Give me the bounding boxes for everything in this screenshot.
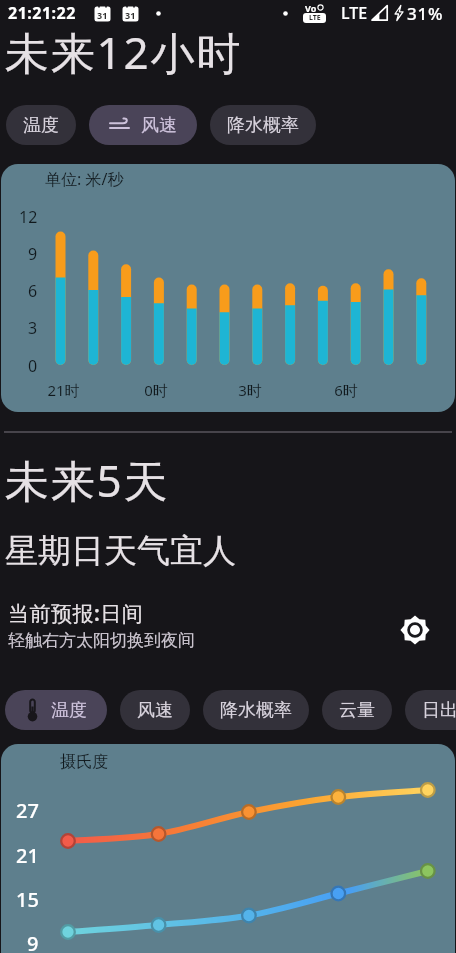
staticText: Vo [305,2,317,14]
staticText: 31 [125,9,136,21]
staticText: 轻触右方太阳切换到夜间 [8,630,195,651]
staticText: 未来5天 [5,450,170,510]
staticText: 0 [28,355,38,377]
staticText: 摄氏度 [60,752,108,772]
staticText: 单位: 米/秒 [45,168,124,190]
button[interactable]: 降水概率 [210,105,316,145]
staticText: 当前预报:日间 [8,599,144,628]
staticText: 6 [28,280,38,302]
staticText: 21 [16,842,39,868]
staticText: 风速 [141,114,177,137]
staticText: 星期日天气宜人 [5,530,236,572]
staticText: LTE [309,13,321,23]
staticText: 风速 [137,699,173,722]
button[interactable]: 云量 [322,690,392,730]
staticText: 降水概率 [227,114,299,137]
staticText: 0时 [144,380,168,400]
staticText: 6时 [334,380,358,400]
staticText: 12 [19,206,38,228]
staticText: 9 [28,243,38,265]
staticText: 27 [16,797,39,823]
staticText: 3 [28,317,38,339]
staticText: 9 [27,930,39,953]
staticText: 21:21:22 [8,2,76,24]
staticText: 降水概率 [220,699,292,722]
button[interactable]: 温度 [5,690,107,730]
staticText: 云量 [339,699,375,722]
staticText: 未来12小时 [5,22,243,82]
button[interactable]: 风速 [120,690,190,730]
staticText: 温度 [51,699,87,722]
staticText: 31 [97,9,108,21]
staticText: 21时 [47,380,80,400]
button[interactable]: 降水概率 [203,690,309,730]
button[interactable]: 温度 [6,105,76,145]
staticText: 15 [16,886,39,912]
button[interactable] [400,615,430,645]
staticText: 温度 [23,114,59,137]
button[interactable]: 风速 [89,105,197,145]
staticText: 31% [407,2,444,25]
staticText: LTE [341,2,368,24]
staticText: 日出日落 [422,699,456,722]
staticText: 3时 [238,380,262,400]
button[interactable]: 日出日落 [405,690,456,730]
